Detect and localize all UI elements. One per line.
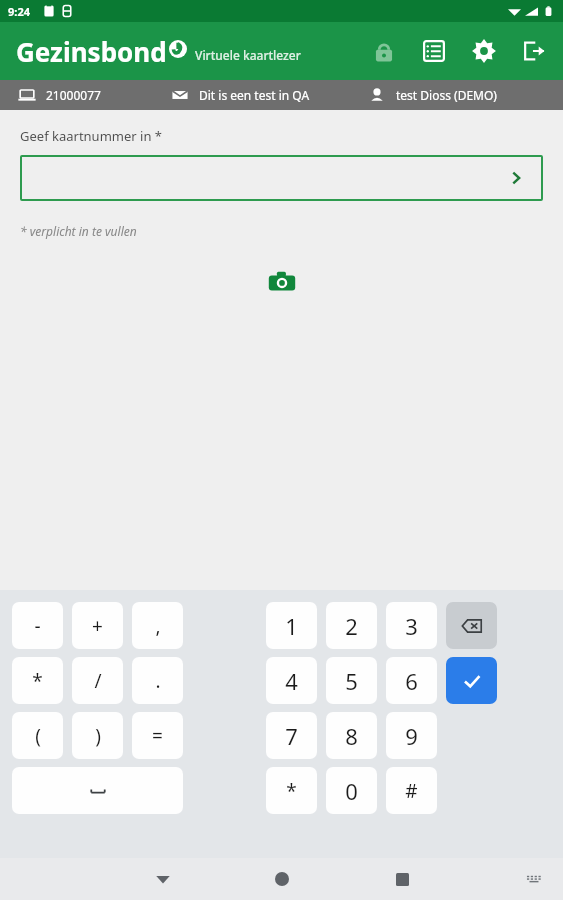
button[interactable]: ( xyxy=(12,712,63,759)
button[interactable]: - xyxy=(12,602,63,649)
staticText: * xyxy=(32,668,43,694)
button[interactable]: * xyxy=(266,767,317,814)
staticText: * verplicht in te vullen xyxy=(20,223,137,239)
button[interactable]: / xyxy=(72,657,123,704)
staticText: , xyxy=(155,613,161,639)
button[interactable]: 6 xyxy=(386,657,437,704)
button[interactable]: Log out xyxy=(517,34,551,68)
button[interactable]: 2 xyxy=(326,602,377,649)
staticText: 21000077 xyxy=(46,87,101,103)
staticText: 6 xyxy=(405,666,418,696)
button[interactable]: Scan with camera xyxy=(261,261,303,303)
staticText: ( xyxy=(35,723,41,749)
button[interactable]: Home xyxy=(264,861,300,897)
staticText: 8 xyxy=(345,721,358,751)
staticText: . xyxy=(155,668,161,694)
staticText: 5 xyxy=(345,666,358,696)
button[interactable]: Settings xyxy=(467,34,501,68)
button[interactable]: * xyxy=(12,657,63,704)
button[interactable]: # xyxy=(386,767,437,814)
button[interactable]: Recent apps xyxy=(384,861,420,897)
button[interactable]: 1 xyxy=(266,602,317,649)
staticText: test Dioss (DEMO) xyxy=(396,87,497,103)
button[interactable]: List xyxy=(417,34,451,68)
staticText: - xyxy=(34,613,41,639)
staticText: / xyxy=(94,668,102,694)
button[interactable]: Submit card number xyxy=(503,165,529,191)
button[interactable]: 0 xyxy=(326,767,377,814)
button[interactable]: Lock xyxy=(367,34,401,68)
staticText: Geef kaartnummer in * xyxy=(20,127,162,145)
button[interactable]: = xyxy=(132,712,183,759)
staticText: 3 xyxy=(405,611,418,641)
staticText: + xyxy=(92,613,103,639)
staticText: 4 xyxy=(285,666,298,696)
staticText: 0 xyxy=(345,776,358,806)
button[interactable]: 9 xyxy=(386,712,437,759)
button[interactable]: 5 xyxy=(326,657,377,704)
staticText: Dit is een test in QA xyxy=(199,87,310,103)
button[interactable]: 3 xyxy=(386,602,437,649)
staticText: 7 xyxy=(285,721,298,751)
staticText: * xyxy=(286,778,297,804)
button[interactable]: Space xyxy=(12,767,183,814)
button[interactable]: . xyxy=(132,657,183,704)
button[interactable]: + xyxy=(72,602,123,649)
button[interactable]: Backspace xyxy=(446,602,497,649)
button[interactable]: Enter xyxy=(446,657,497,704)
button[interactable]: , xyxy=(132,602,183,649)
button[interactable]: ) xyxy=(72,712,123,759)
button[interactable]: 7 xyxy=(266,712,317,759)
staticText: 1 xyxy=(285,611,298,641)
button[interactable]: 4 xyxy=(266,657,317,704)
staticText: ) xyxy=(95,723,101,749)
button[interactable]: Submit card number xyxy=(20,155,543,201)
button[interactable]: Switch keyboard xyxy=(519,864,549,894)
staticText: 2 xyxy=(345,611,358,641)
staticText: 9 xyxy=(405,721,418,751)
button[interactable]: 8 xyxy=(326,712,377,759)
staticText: Gezinsbond xyxy=(16,34,167,69)
staticText: = xyxy=(152,723,163,749)
button[interactable]: Back xyxy=(145,861,181,897)
staticText: Virtuele kaartlezer xyxy=(195,47,301,63)
staticText: 9:24 xyxy=(8,4,30,19)
staticText: # xyxy=(405,778,418,804)
